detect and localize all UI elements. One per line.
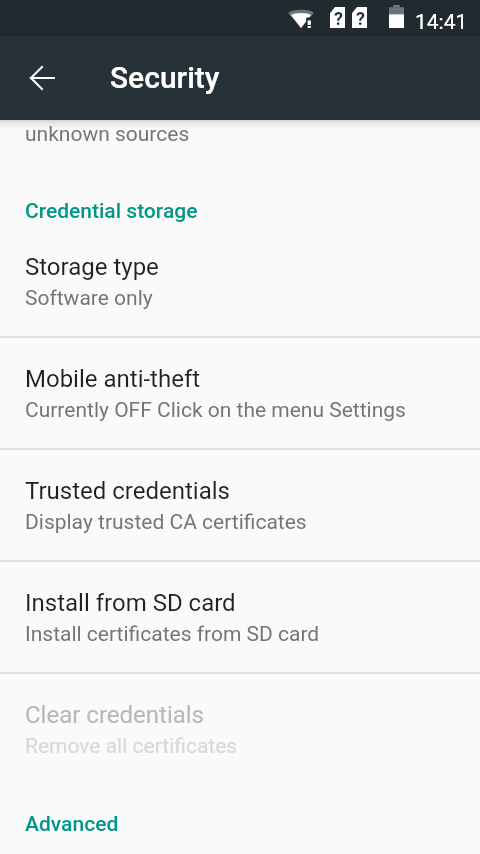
staticText: Software only	[25, 286, 153, 311]
staticText: ?	[334, 8, 343, 29]
button[interactable]: Install from SD card	[0, 560, 480, 672]
staticText: unknown sources	[25, 122, 190, 147]
staticText: Security	[110, 60, 220, 95]
staticText: Mobile anti-theft	[25, 365, 201, 393]
button[interactable]: Navigate up	[18, 54, 66, 102]
staticText: Advanced	[25, 812, 119, 837]
button[interactable]: Storage type	[0, 224, 480, 336]
staticText: Install from SD card	[25, 589, 236, 617]
button[interactable]: Trusted credentials	[0, 448, 480, 560]
staticText: Trusted credentials	[25, 477, 230, 505]
other: Wi-Fi connected, no internet	[288, 7, 314, 28]
staticText: Install certificates from SD card	[25, 622, 320, 647]
staticText: Credential storage	[25, 199, 198, 224]
staticText: Storage type	[25, 253, 159, 281]
staticText: Currently OFF Click on the menu Settings	[25, 398, 406, 423]
staticText: ?	[356, 8, 365, 29]
staticText: Display trusted CA certificates	[25, 510, 307, 535]
staticText: Remove all certificates	[25, 734, 238, 759]
button[interactable]: Mobile anti-theft	[0, 336, 480, 448]
other: Battery 65 percent	[389, 5, 404, 28]
staticText: Clear credentials	[25, 701, 205, 729]
button[interactable]: Clear credentials	[0, 672, 480, 784]
staticText: 14:41	[415, 10, 468, 35]
